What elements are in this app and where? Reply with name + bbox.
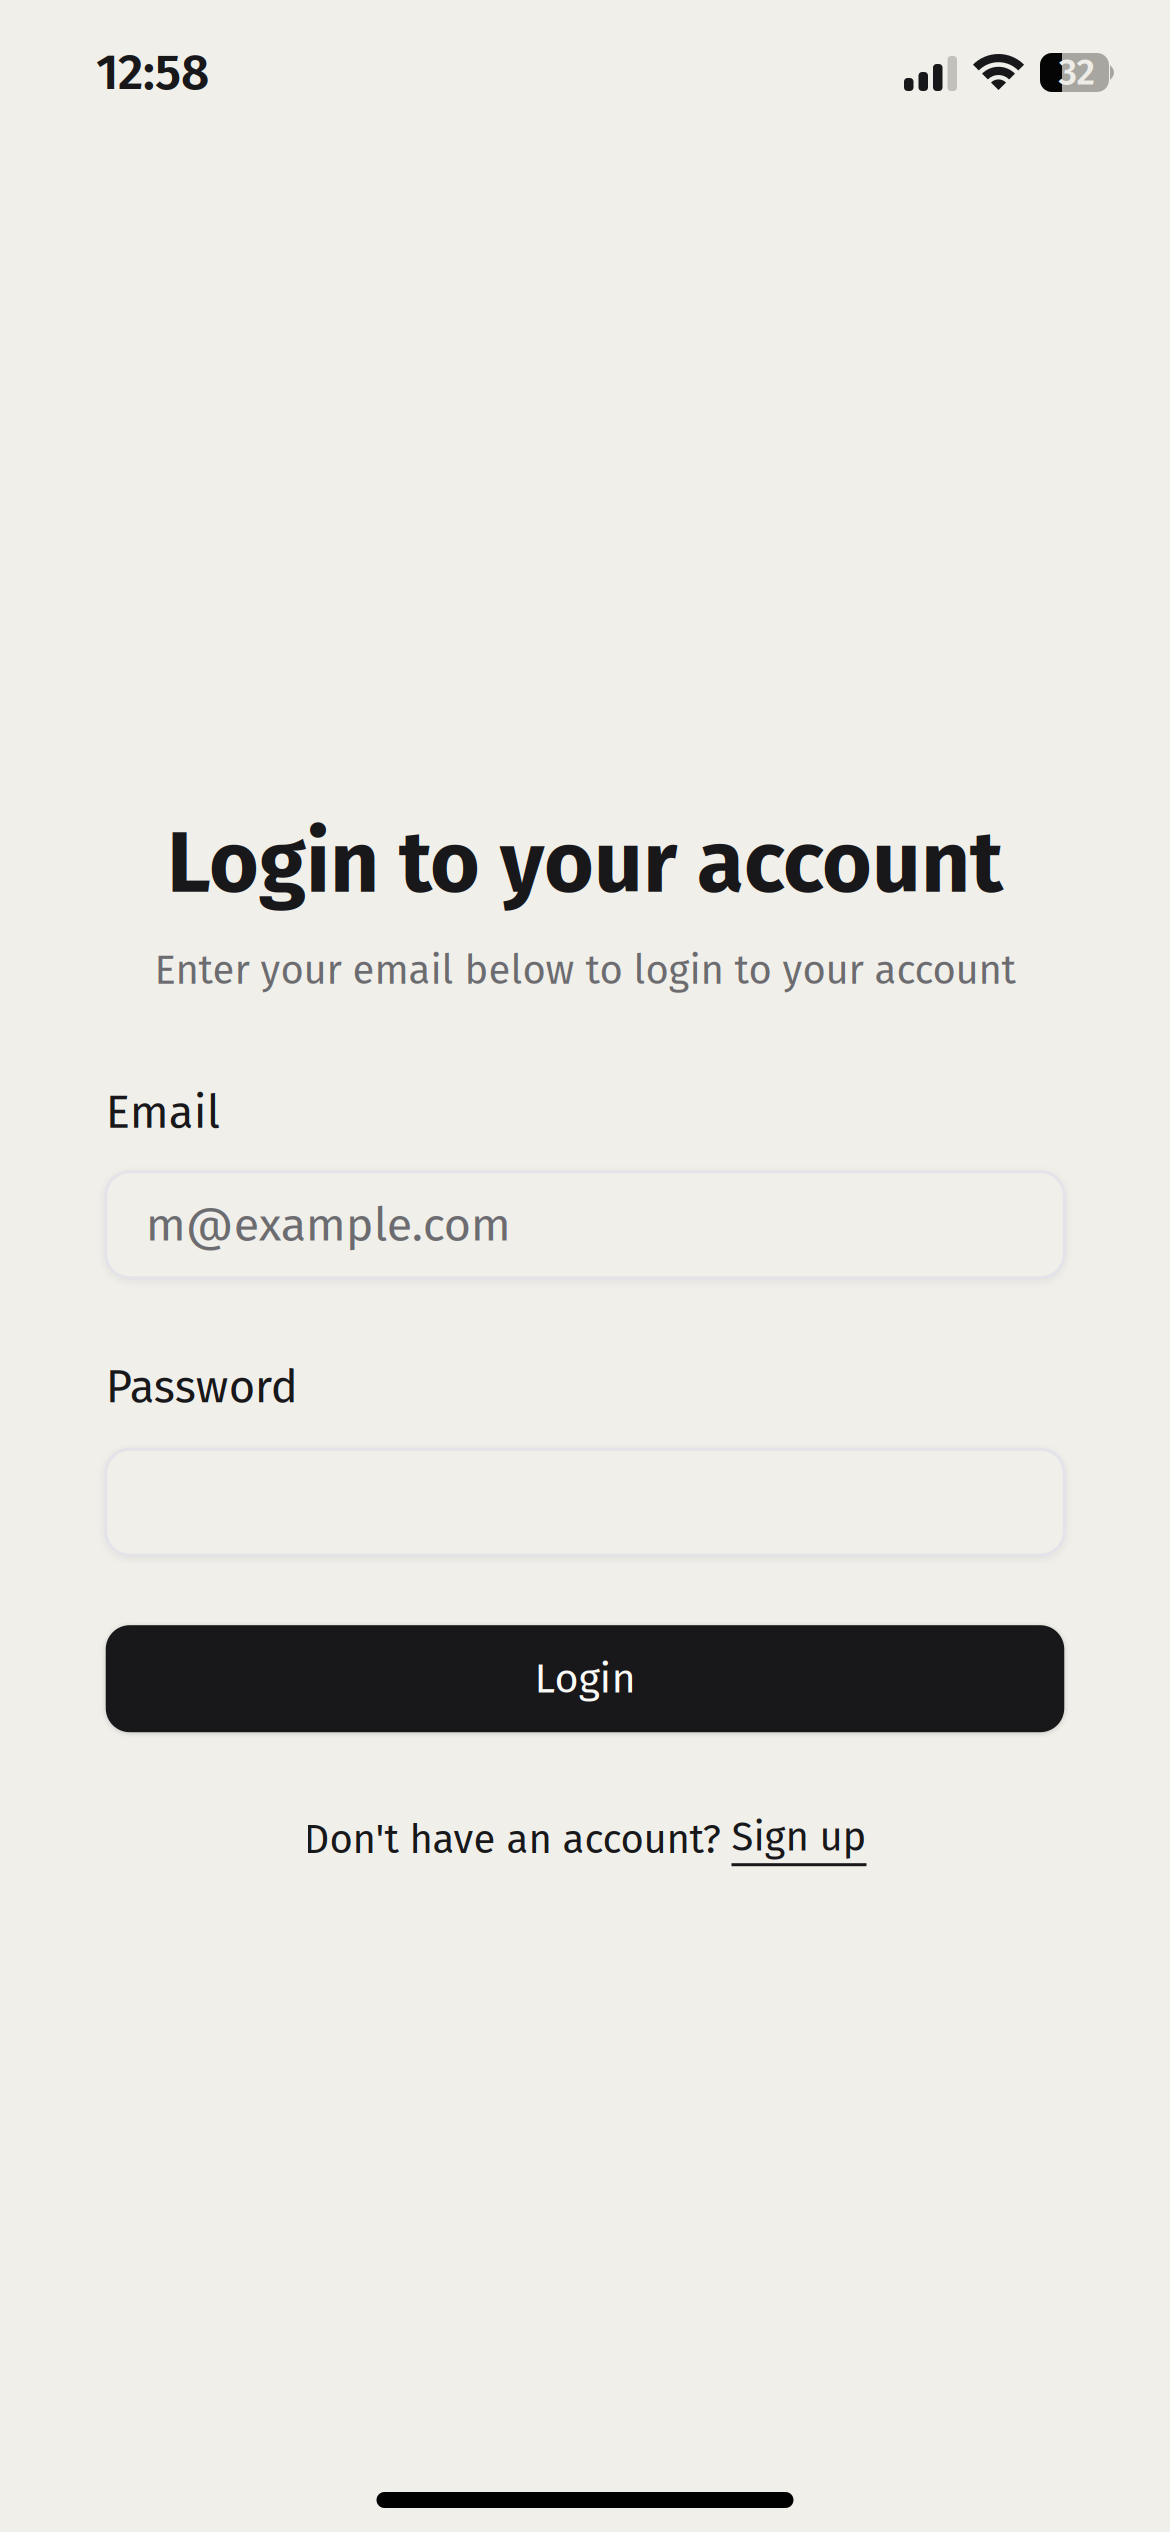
staticText: Enter your email below to login to your …	[154, 946, 1015, 994]
staticText: Sign up	[731, 1813, 866, 1861]
staticText: 12:58	[96, 43, 209, 102]
staticText: Password	[106, 1360, 298, 1414]
staticText: 32	[1058, 51, 1094, 94]
staticText: Don't have an account?	[303, 1816, 731, 1864]
button[interactable]: Login	[106, 1625, 1064, 1732]
staticText: Login	[534, 1654, 635, 1703]
staticText: Login to your account	[167, 812, 1003, 914]
button[interactable]: Don't have an account?	[303, 1813, 866, 1866]
staticText: Email	[106, 1085, 220, 1140]
staticText: m@example.com	[146, 1197, 511, 1253]
